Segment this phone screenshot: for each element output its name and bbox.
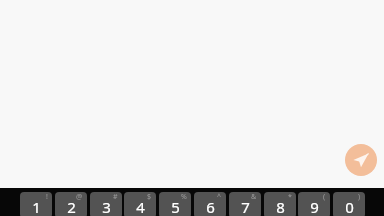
staticText: * — [288, 192, 292, 202]
staticText: ^ — [217, 192, 222, 202]
staticText: % — [181, 192, 187, 202]
button[interactable]: 7 — [229, 192, 261, 216]
staticText: 1 — [32, 197, 41, 216]
staticText: # — [113, 192, 118, 202]
staticText: 6 — [206, 197, 215, 216]
staticText: @ — [76, 192, 83, 202]
button[interactable]: 6 — [194, 192, 226, 216]
staticText: 3 — [102, 197, 111, 216]
staticText: ! — [46, 192, 48, 202]
staticText: ) — [358, 192, 361, 202]
staticText: 8 — [276, 197, 285, 216]
button[interactable]: 1 — [20, 192, 52, 216]
staticText: 4 — [136, 197, 145, 216]
staticText: 9 — [310, 197, 319, 216]
staticText: 7 — [241, 197, 250, 216]
staticText: ( — [323, 192, 326, 202]
staticText: $ — [147, 192, 152, 202]
staticText: 2 — [67, 197, 76, 216]
button[interactable]: 8 — [264, 192, 296, 216]
staticText: & — [251, 192, 257, 202]
button[interactable]: 2 — [55, 192, 87, 216]
button[interactable]: 5 — [159, 192, 191, 216]
staticText: 5 — [171, 197, 180, 216]
button[interactable]: 4 — [124, 192, 156, 216]
button[interactable]: 0 — [333, 192, 365, 216]
button[interactable]: 9 — [298, 192, 330, 216]
button[interactable]: Send — [345, 144, 377, 176]
staticText: 0 — [345, 197, 354, 216]
button[interactable]: 3 — [90, 192, 122, 216]
